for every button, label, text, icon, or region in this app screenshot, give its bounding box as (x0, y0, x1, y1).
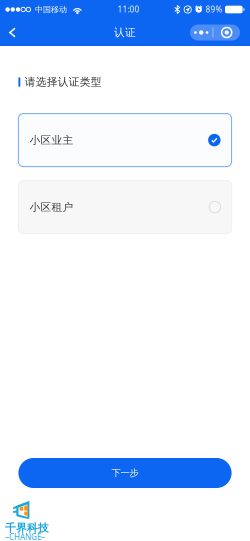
staticText: 89% (205, 4, 222, 15)
staticText: 认证 (114, 26, 136, 39)
button[interactable]: 小区业主 (18, 114, 232, 167)
staticText: 11:00 (118, 4, 140, 15)
button[interactable]: 返回 (0, 19, 31, 46)
staticText: –CHANGE– (5, 532, 45, 541)
button[interactable]: 小区租户 (18, 181, 232, 234)
button[interactable]: 更多 (190, 24, 250, 40)
staticText: 小区租户 (29, 201, 73, 214)
staticText: 小区业主 (29, 134, 73, 147)
staticText: 请选择认证类型 (25, 75, 102, 89)
staticText: 中国移动 (35, 5, 67, 14)
button[interactable]: 下一步 (18, 458, 232, 488)
staticText: 千界科技 (5, 521, 49, 534)
staticText: 下一步 (111, 467, 138, 479)
